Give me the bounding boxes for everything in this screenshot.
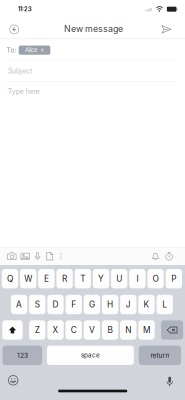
button[interactable]: Y — [93, 269, 109, 288]
staticText: S — [35, 299, 40, 309]
staticText: Z — [35, 325, 40, 335]
button[interactable]: J — [120, 295, 136, 314]
button[interactable]: R — [56, 269, 73, 288]
staticText: C — [71, 325, 77, 335]
staticText: To: — [6, 46, 16, 54]
staticText: B — [108, 325, 113, 335]
staticText: U — [116, 274, 122, 284]
button[interactable]: P — [166, 269, 182, 288]
staticText: H — [107, 299, 113, 309]
staticText: New message — [64, 23, 123, 34]
staticText: R — [62, 274, 67, 284]
staticText: Q — [7, 274, 13, 284]
button[interactable]: Back — [2, 19, 26, 39]
staticText: return — [150, 351, 169, 359]
staticText: O — [153, 274, 159, 284]
staticText: P — [171, 274, 176, 284]
button[interactable]: Emoji keyboard — [6, 373, 21, 388]
button[interactable]: I — [129, 269, 146, 288]
button[interactable]: Notify me — [149, 249, 161, 264]
staticText: N — [125, 325, 131, 335]
button[interactable]: D — [47, 295, 64, 314]
button[interactable]: H — [102, 295, 118, 314]
staticText: ✕ — [40, 47, 44, 53]
button[interactable]: X — [47, 320, 64, 340]
button[interactable]: Record audio — [32, 249, 43, 264]
staticText: I — [136, 274, 138, 284]
button[interactable]: To: — [0, 40, 185, 61]
staticText: V — [89, 325, 95, 335]
button[interactable]: Subject — [0, 60, 185, 82]
button[interactable]: S — [29, 295, 45, 314]
staticText: L — [162, 299, 167, 309]
button[interactable]: A — [11, 295, 27, 314]
button[interactable]: T — [75, 269, 91, 288]
staticText: M — [143, 325, 150, 335]
button[interactable]: V — [84, 320, 100, 340]
button[interactable]: Shift — [2, 320, 23, 340]
staticText: Type here — [8, 87, 40, 96]
staticText: 11:23 — [18, 6, 32, 13]
staticText: X — [52, 325, 58, 335]
button[interactable]: E — [38, 269, 55, 288]
button[interactable]: N — [120, 320, 136, 340]
staticText: J — [126, 299, 131, 309]
staticText: 123 — [17, 351, 28, 359]
staticText: G — [89, 299, 95, 309]
button[interactable]: 123 — [3, 346, 42, 365]
button[interactable]: C — [65, 320, 82, 340]
staticText: K — [143, 299, 149, 309]
staticText: T — [80, 274, 85, 284]
button[interactable]: M — [138, 320, 155, 340]
button[interactable]: space — [47, 346, 134, 365]
staticText: space — [81, 351, 100, 359]
button[interactable]: K — [138, 295, 155, 314]
button[interactable]: Photo library — [19, 249, 32, 264]
button[interactable]: More attachments — [56, 249, 65, 264]
staticText: Alice — [25, 46, 37, 54]
button[interactable]: F — [65, 295, 82, 314]
staticText: W — [24, 274, 32, 284]
button[interactable]: Schedule send — [163, 249, 175, 264]
button[interactable]: Z — [29, 320, 45, 340]
button[interactable]: Dictation — [162, 374, 177, 389]
button[interactable]: L — [156, 295, 173, 314]
button[interactable]: G — [84, 295, 100, 314]
button[interactable]: W — [20, 269, 36, 288]
button[interactable]: Camera — [5, 249, 18, 264]
staticText: D — [52, 299, 58, 309]
staticText: A — [16, 299, 22, 309]
staticText: F — [71, 299, 76, 309]
button[interactable]: return — [139, 346, 181, 365]
button[interactable]: O — [147, 269, 164, 288]
button[interactable]: B — [102, 320, 118, 340]
staticText: Y — [98, 274, 104, 284]
staticText: Subject — [8, 67, 32, 75]
button[interactable]: Attach file — [44, 249, 55, 264]
staticText: E — [44, 274, 49, 284]
button[interactable]: Send — [154, 19, 178, 39]
button[interactable]: Delete — [161, 320, 183, 340]
button[interactable]: Q — [2, 269, 18, 288]
button[interactable]: U — [111, 269, 127, 288]
